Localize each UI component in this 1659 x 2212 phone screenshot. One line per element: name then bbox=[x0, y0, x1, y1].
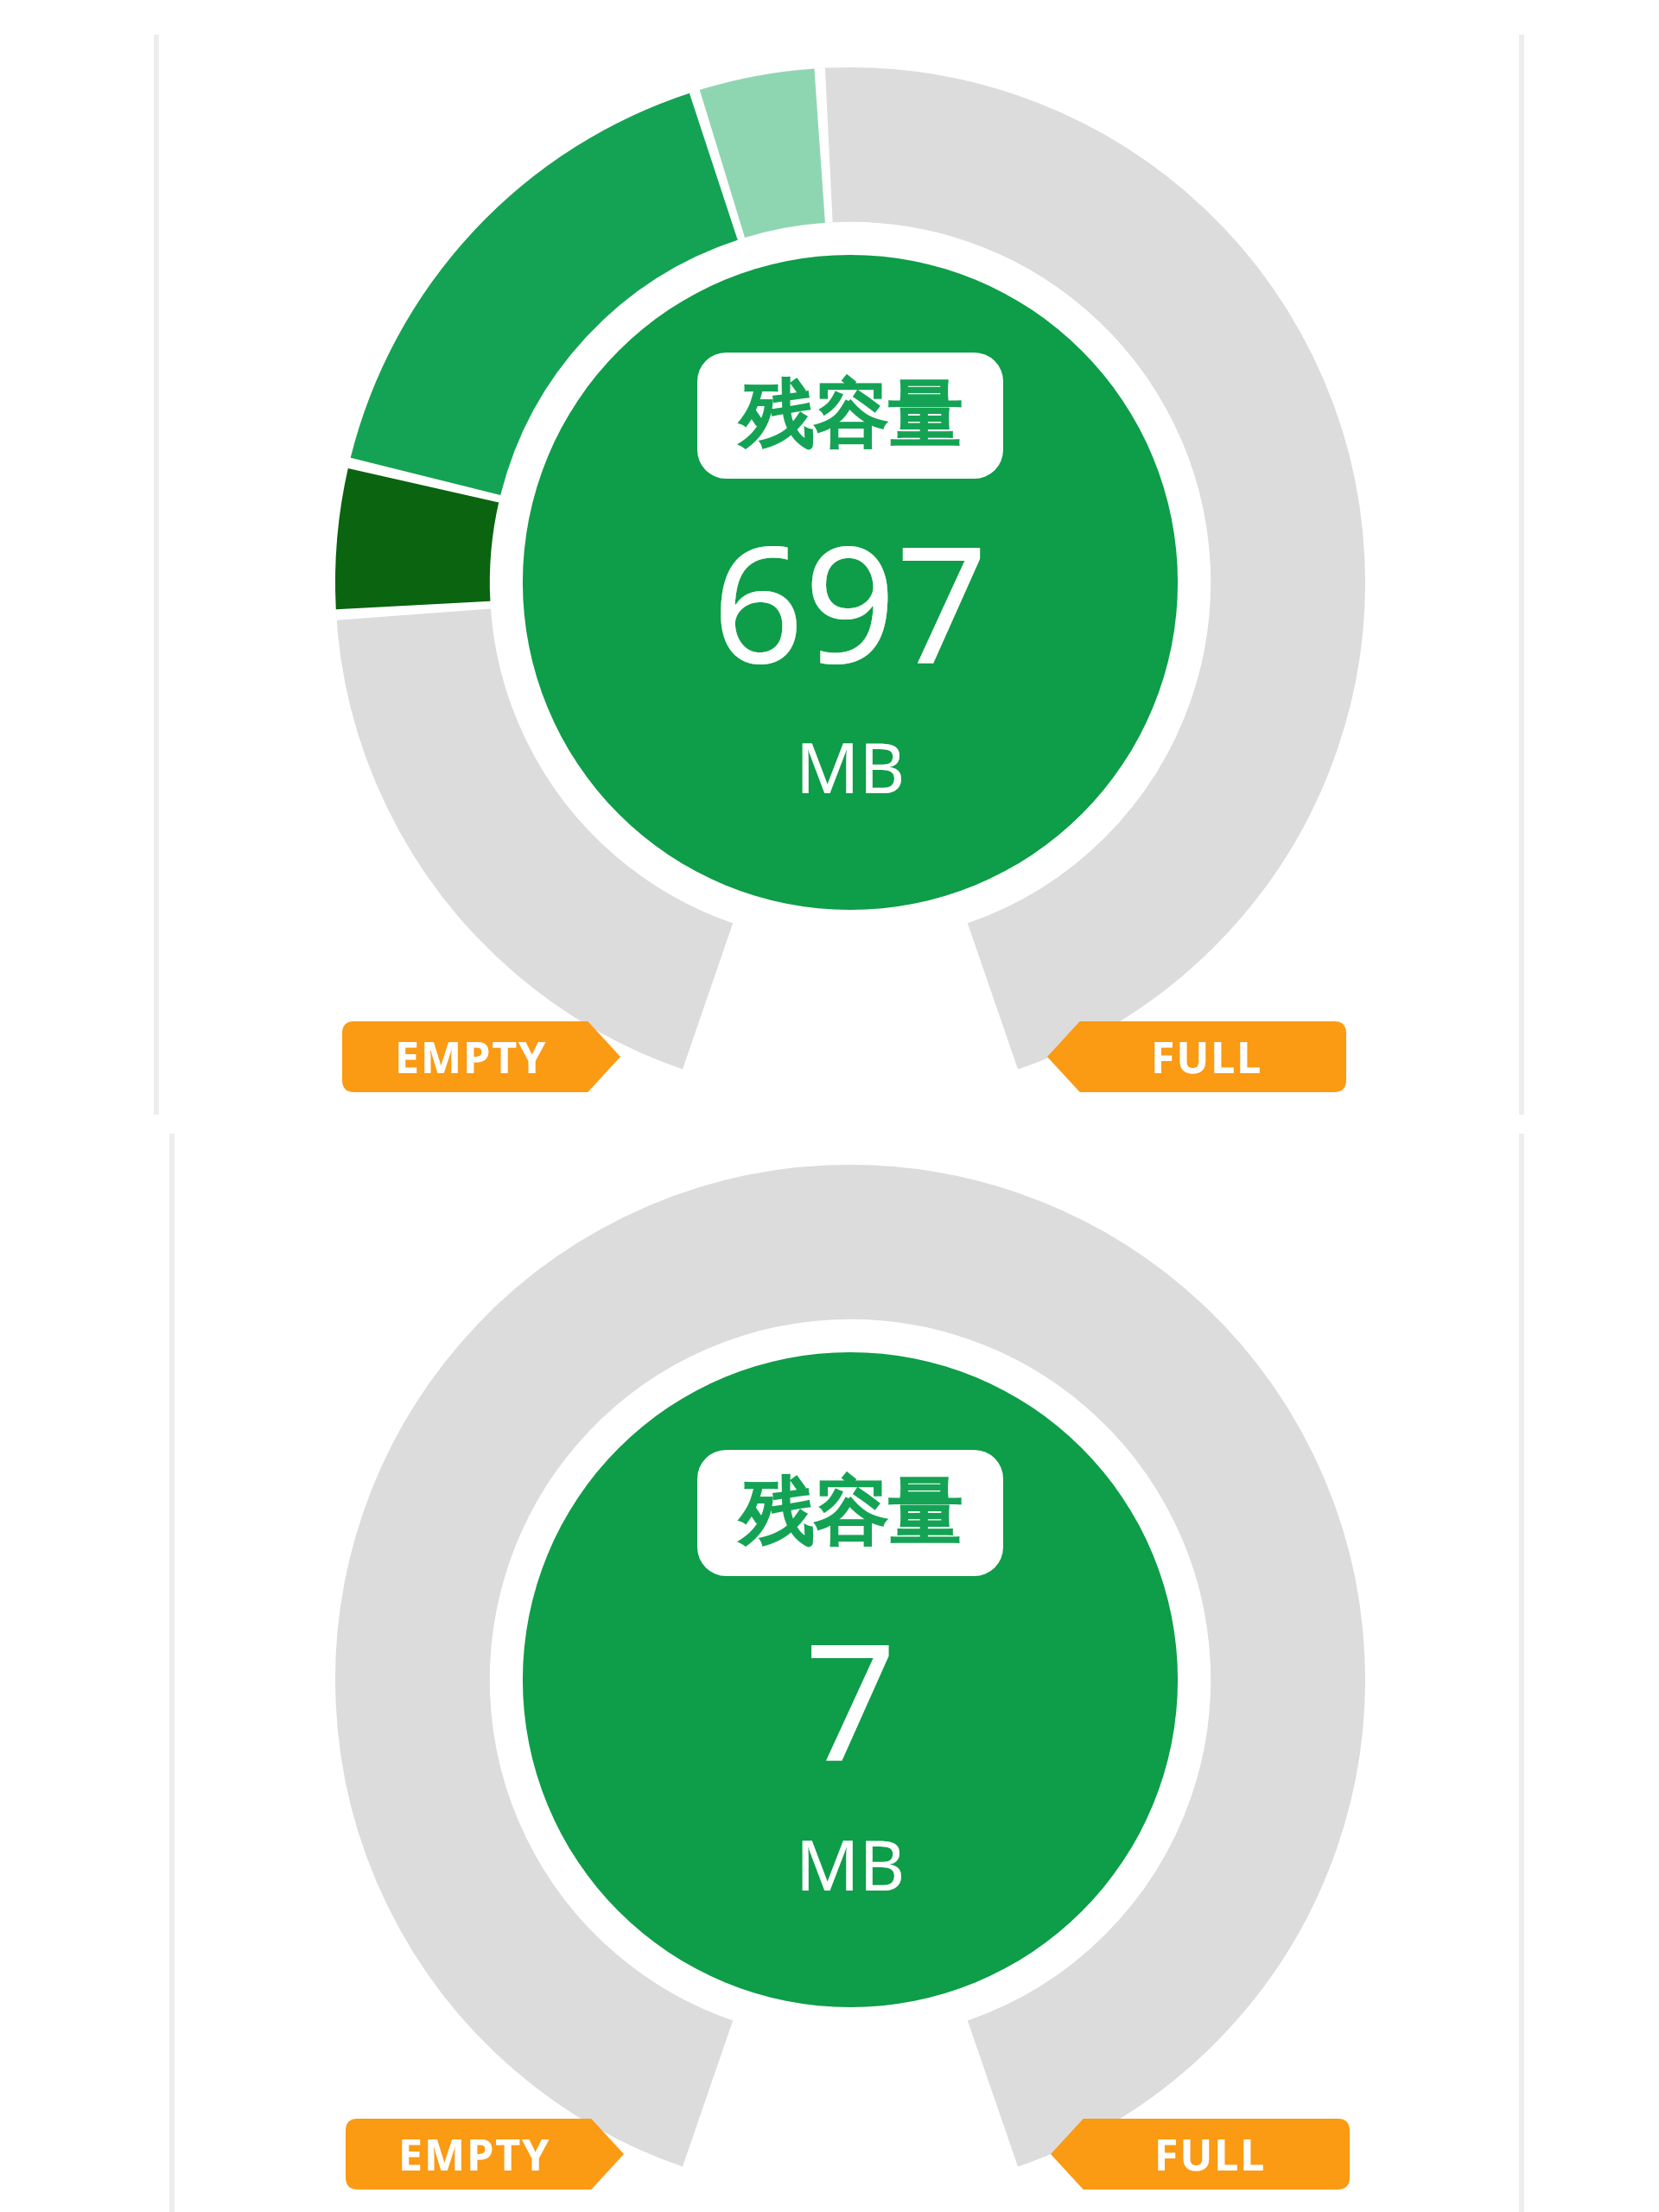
button[interactable]: 残容量 bbox=[739, 369, 962, 462]
staticText: EMPTY bbox=[398, 2125, 551, 2183]
staticText: 697 bbox=[712, 491, 988, 709]
staticText: MB bbox=[796, 1815, 906, 1910]
button[interactable]: EMPTY bbox=[342, 1021, 620, 1092]
staticText: FULL bbox=[1151, 1027, 1263, 1086]
staticText: 残容量 bbox=[739, 369, 962, 462]
button[interactable]: EMPTY bbox=[346, 2119, 624, 2190]
staticText: 7 bbox=[804, 1588, 897, 1807]
button[interactable]: FULL bbox=[1047, 1021, 1346, 1092]
staticText: MB bbox=[796, 718, 906, 813]
button[interactable]: FULL bbox=[1051, 2119, 1350, 2190]
button[interactable]: 残容量 bbox=[739, 1466, 962, 1560]
staticText: FULL bbox=[1154, 2125, 1267, 2183]
staticText: 残容量 bbox=[739, 1466, 962, 1560]
staticText: EMPTY bbox=[395, 1027, 548, 1086]
